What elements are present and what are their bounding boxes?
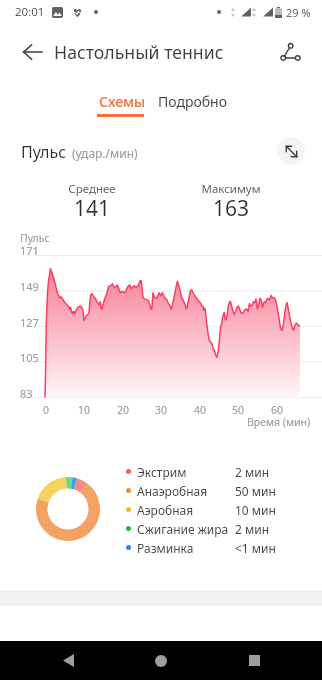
staticText: Анаэробная [137,483,235,499]
staticText: 141 [32,194,152,223]
staticText: 29 % [286,5,311,20]
button[interactable]: Back [43,641,93,680]
button[interactable]: Подробно [151,88,235,115]
staticText: Пульс [21,141,67,163]
staticText: 2 мин [235,464,270,480]
button[interactable]: Home [136,641,186,680]
button[interactable]: Recent apps [229,641,279,680]
staticText: 20:01 [15,4,45,20]
button[interactable]: Share [270,32,310,72]
staticText: Сжигание жира [137,521,235,537]
staticText: Пульс [20,231,50,245]
staticText: 163 [171,194,291,223]
staticText: Время (мин) [247,415,311,429]
staticText: 0 [34,403,58,417]
staticText: 50 [226,403,250,417]
staticText: 10 [72,403,96,417]
staticText: 127 [20,315,39,330]
staticText: 10 мин [235,502,276,518]
staticText: Схемы [99,92,146,111]
button[interactable]: Back [12,32,52,72]
staticText: Разминка [137,540,235,556]
staticText: 2 мин [235,521,270,537]
staticText: 40 [188,403,212,417]
staticText: Экстрим [137,464,235,480]
staticText: 105 [20,350,39,365]
staticText: 50 мин [235,483,276,499]
staticText: 83 [20,386,33,401]
staticText: 60 [265,403,289,417]
staticText: Подробно [158,92,228,111]
staticText: 20 [111,403,135,417]
staticText: Среднее [32,181,152,197]
staticText: (удар./мин) [72,145,138,161]
staticText: Максимум [171,181,291,197]
staticText: <1 мин [235,540,276,556]
button[interactable]: Expand chart [277,137,305,165]
button[interactable]: Схемы [92,88,153,115]
staticText: 171 [20,243,39,258]
staticText: 30 [149,403,173,417]
staticText: Аэробная [137,502,235,518]
staticText: 149 [20,279,39,294]
staticText: Настольный теннис [54,40,224,64]
